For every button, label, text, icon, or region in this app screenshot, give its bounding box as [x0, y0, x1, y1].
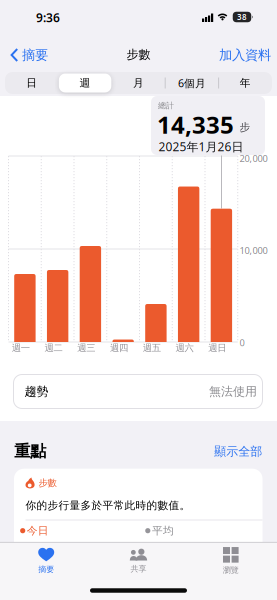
- staticText: 加入資料: [219, 47, 271, 63]
- staticText: 今日: [27, 524, 49, 537]
- staticText: 週五: [143, 342, 161, 354]
- staticText: 2025年1月26日: [158, 138, 243, 154]
- button[interactable]: 瀏覽: [223, 547, 239, 575]
- button[interactable]: 月: [112, 72, 164, 94]
- staticText: 9:36: [36, 9, 60, 25]
- staticText: 週六: [176, 342, 194, 354]
- button[interactable]: 趨勢: [13, 374, 262, 408]
- staticText: 共享: [130, 564, 146, 574]
- staticText: 0: [239, 336, 244, 349]
- button[interactable]: 加入資料: [219, 47, 271, 63]
- staticText: 步: [239, 121, 250, 134]
- staticText: 20,000: [239, 152, 267, 164]
- button[interactable]: 週: [59, 72, 111, 94]
- staticText: 瀏覽: [223, 565, 239, 575]
- staticText: 週日: [208, 342, 226, 354]
- staticText: 年: [240, 76, 251, 89]
- staticText: 趨勢: [24, 384, 48, 399]
- button[interactable]: [14, 469, 262, 559]
- staticText: 摘要: [22, 47, 48, 63]
- staticText: 6個月: [178, 76, 206, 90]
- staticText: 總計: [158, 101, 174, 110]
- staticText: 週三: [77, 342, 95, 354]
- staticText: 摘要: [38, 564, 54, 574]
- staticText: 10,000: [239, 244, 267, 257]
- staticText: 週: [80, 76, 91, 89]
- staticText: 平均: [152, 524, 174, 537]
- button[interactable]: 日: [6, 72, 58, 94]
- staticText: 步數: [126, 47, 150, 62]
- button[interactable]: 年: [219, 72, 271, 94]
- staticText: 月: [133, 76, 144, 89]
- staticText: 步數: [38, 477, 56, 489]
- staticText: 週四: [110, 342, 128, 354]
- staticText: 38: [237, 12, 247, 22]
- staticText: 重點: [14, 441, 46, 461]
- staticText: 週二: [44, 342, 62, 354]
- staticText: 顯示全部: [214, 444, 262, 459]
- staticText: 日: [26, 76, 37, 89]
- button[interactable]: 共享: [130, 548, 147, 574]
- staticText: 週一: [12, 342, 30, 354]
- button[interactable]: 顯示全部: [214, 444, 262, 459]
- staticText: 14,335: [157, 109, 234, 140]
- button[interactable]: 摘要: [38, 548, 54, 574]
- button[interactable]: 6個月: [166, 72, 218, 94]
- staticText: 無法使用: [209, 384, 257, 399]
- staticText: 你的步行量多於平常此時的數值。: [25, 499, 190, 512]
- button[interactable]: 返回摘要: [10, 47, 48, 63]
